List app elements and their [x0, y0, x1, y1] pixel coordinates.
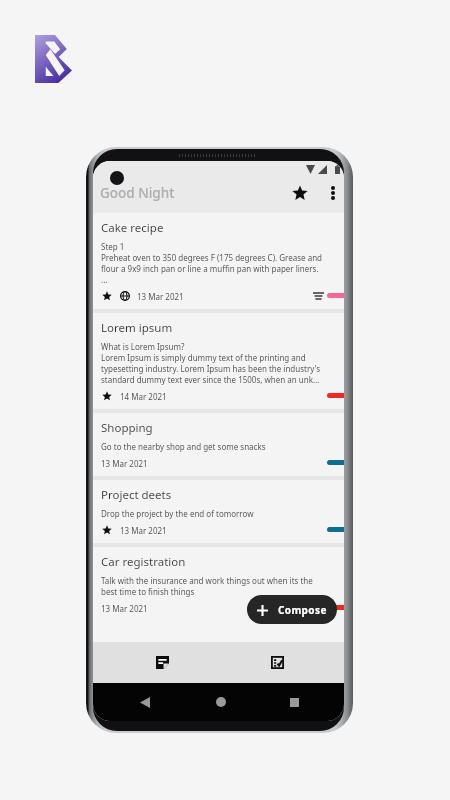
staticText: 13 Mar 2021 — [137, 291, 184, 302]
staticText: standard dummy text ever since the 1500s… — [101, 374, 320, 385]
button[interactable]: Project deets — [93, 480, 344, 543]
staticText: Drop the project by the end of tomorrow — [101, 508, 254, 519]
staticText: 13 Mar 2021 — [101, 603, 148, 614]
button[interactable]: Compose — [247, 595, 337, 624]
button[interactable]: Tasks — [232, 642, 344, 683]
staticText: Compose — [278, 603, 327, 617]
staticText: Shopping — [101, 420, 153, 436]
button[interactable]: Notes — [93, 642, 232, 683]
button[interactable]: Lorem ipsum — [93, 313, 344, 409]
button[interactable]: Back — [133, 690, 157, 714]
staticText: Project deets — [101, 487, 172, 503]
staticText: Lorem ipsum — [101, 320, 173, 336]
staticText: flour a 9x9 inch pan or line a muffin pa… — [101, 263, 319, 274]
staticText: Go to the nearby shop and get some snack… — [101, 441, 266, 452]
staticText: 13 Mar 2021 — [120, 525, 167, 536]
button[interactable]: Shopping — [93, 413, 344, 476]
button[interactable]: Favourites — [287, 180, 312, 205]
button[interactable]: Recent apps — [282, 690, 306, 714]
staticText: 13 Mar 2021 — [101, 458, 148, 469]
staticText: What is Lorem Ipsum? — [101, 341, 185, 352]
staticText: Good Night — [100, 184, 175, 202]
button[interactable]: Cake recipe — [93, 213, 344, 309]
button[interactable]: More options — [323, 183, 343, 203]
staticText: typesetting industry. Lorem Ipsum has be… — [101, 363, 321, 374]
staticText: Cake recipe — [101, 220, 164, 236]
staticText: Talk with the insurance and work things … — [101, 575, 313, 586]
staticText: 14 Mar 2021 — [120, 391, 167, 402]
staticText: Lorem Ipsum is simply dummy text of the … — [101, 352, 306, 363]
staticText: Preheat oven to 350 degrees F (175 degre… — [101, 252, 323, 263]
staticText: best time to finish things — [101, 586, 195, 597]
staticText: Step 1 — [101, 241, 125, 252]
staticText: Car registration — [101, 554, 186, 570]
button[interactable]: Home — [209, 690, 233, 714]
staticText: ... — [101, 274, 108, 285]
button[interactable]: Car registration — [93, 547, 344, 621]
